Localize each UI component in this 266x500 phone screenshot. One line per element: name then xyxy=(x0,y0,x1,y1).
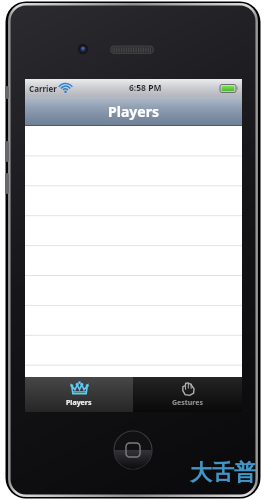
staticText: Carrier xyxy=(29,83,57,94)
staticText: Gestures xyxy=(172,398,204,408)
button[interactable]: Gestures xyxy=(133,377,242,412)
staticText: 大舌普 xyxy=(190,459,256,487)
staticText: Players xyxy=(108,102,159,121)
button[interactable]: Players xyxy=(25,377,133,412)
staticText: 6:58 PM xyxy=(129,82,162,94)
staticText: Players xyxy=(66,398,92,408)
